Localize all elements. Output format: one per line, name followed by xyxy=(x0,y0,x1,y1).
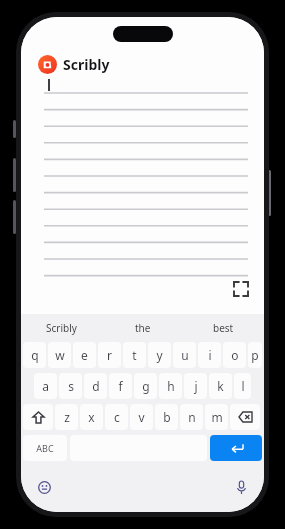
staticText: k xyxy=(217,378,224,394)
button[interactable]: f xyxy=(109,373,132,399)
staticText: c xyxy=(114,409,120,425)
button[interactable]: m xyxy=(205,404,228,430)
button[interactable]: b xyxy=(155,404,178,430)
button[interactable]: c xyxy=(105,404,128,430)
button[interactable]: s xyxy=(59,373,82,399)
staticText: z xyxy=(64,409,70,425)
button[interactable]: w xyxy=(48,342,71,368)
staticText: w xyxy=(55,347,65,363)
staticText: t xyxy=(132,347,137,363)
staticText: r xyxy=(107,347,112,363)
staticText: v xyxy=(138,409,145,425)
button[interactable]: i xyxy=(198,342,221,368)
staticText: l xyxy=(241,378,245,394)
button[interactable]: e xyxy=(73,342,96,368)
staticText: y xyxy=(156,347,163,363)
button[interactable]: l xyxy=(234,373,251,399)
button[interactable]: z xyxy=(55,404,78,430)
staticText: n xyxy=(188,409,196,425)
button[interactable]: x xyxy=(80,404,103,430)
button[interactable]: Scan text xyxy=(230,278,252,300)
staticText: b xyxy=(163,409,171,425)
button[interactable]: k xyxy=(209,373,232,399)
button[interactable]: Scribly xyxy=(21,314,102,342)
button[interactable]: t xyxy=(123,342,146,368)
button[interactable]: d xyxy=(84,373,107,399)
button[interactable]: p xyxy=(248,342,262,368)
staticText: g xyxy=(142,378,150,394)
staticText: q xyxy=(31,347,39,363)
staticText: x xyxy=(88,409,95,425)
button[interactable]: n xyxy=(180,404,203,430)
staticText: d xyxy=(92,378,100,394)
button[interactable]: Backspace xyxy=(230,404,260,430)
button[interactable]: j xyxy=(184,373,207,399)
staticText: a xyxy=(42,378,49,394)
button[interactable]: Return xyxy=(210,435,262,461)
button[interactable]: o xyxy=(223,342,246,368)
button[interactable]: Emoji xyxy=(33,476,55,498)
button[interactable]: r xyxy=(98,342,121,368)
staticText: h xyxy=(167,378,175,394)
staticText: p xyxy=(251,347,259,363)
button[interactable]: u xyxy=(173,342,196,368)
staticText: Scribly xyxy=(46,321,77,335)
staticText: i xyxy=(208,347,212,363)
button[interactable]: g xyxy=(134,373,157,399)
button[interactable]: the xyxy=(102,314,183,342)
button[interactable]: best xyxy=(183,314,264,342)
staticText: s xyxy=(68,378,74,394)
staticText: j xyxy=(194,378,198,394)
staticText: Scribly xyxy=(63,55,110,74)
button[interactable]: Shift xyxy=(23,404,53,430)
staticText: o xyxy=(231,347,239,363)
button[interactable]: Voice input xyxy=(230,476,252,498)
button[interactable]: y xyxy=(148,342,171,368)
staticText: best xyxy=(213,321,234,335)
button[interactable]: a xyxy=(34,373,57,399)
button[interactable]: h xyxy=(159,373,182,399)
staticText: f xyxy=(118,378,123,394)
staticText: ABC xyxy=(36,442,54,454)
staticText: u xyxy=(181,347,189,363)
button[interactable]: q xyxy=(23,342,46,368)
staticText: m xyxy=(211,409,223,425)
button[interactable]: ABC xyxy=(23,435,67,461)
staticText: the xyxy=(135,321,151,335)
staticText: e xyxy=(81,347,88,363)
button[interactable]: v xyxy=(130,404,153,430)
